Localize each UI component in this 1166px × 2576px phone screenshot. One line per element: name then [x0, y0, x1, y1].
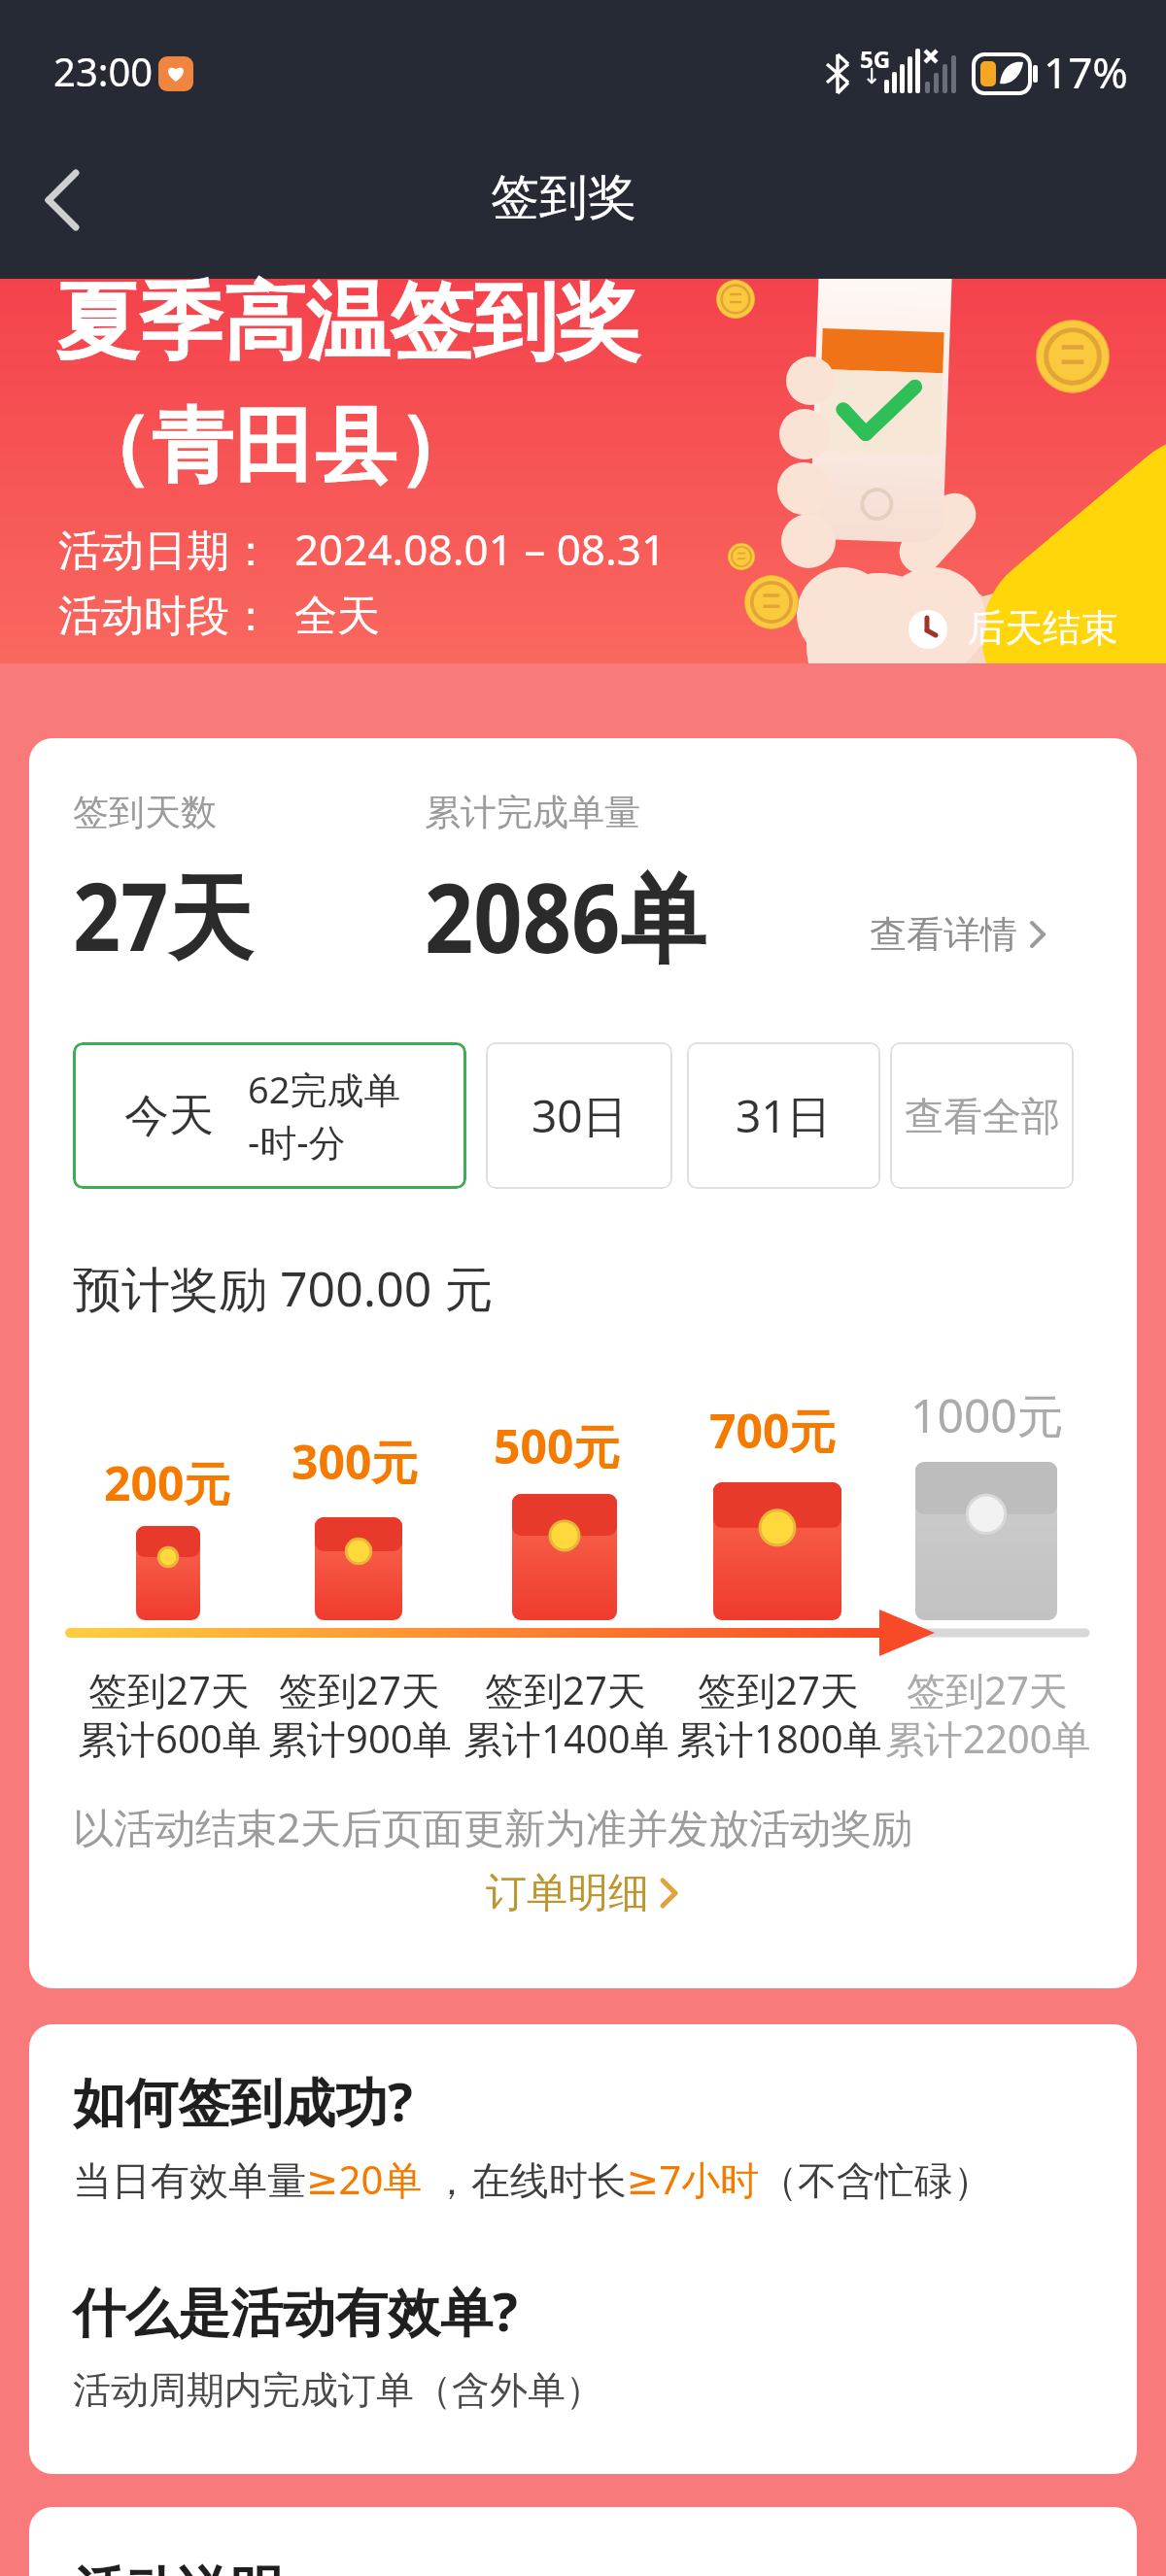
- staticText: 查看详情: [870, 911, 1017, 958]
- staticText: 签到27天: [698, 1663, 859, 1716]
- staticText: 200元: [104, 1451, 231, 1515]
- staticText: 签到天数: [73, 790, 217, 835]
- staticText: 累计完成单量: [425, 790, 640, 835]
- button[interactable]: 订单明细: [486, 1863, 695, 1923]
- staticText: 如何签到成功?: [73, 2065, 413, 2137]
- staticText: 300元: [291, 1430, 419, 1494]
- staticText: 62完成单: [248, 1064, 401, 1114]
- button[interactable]: 查看详情: [870, 905, 1079, 964]
- staticText: 500元: [494, 1414, 621, 1478]
- staticText: 后天结束: [967, 604, 1118, 652]
- staticText: 5G: [860, 43, 891, 75]
- staticText: 签到27天: [485, 1663, 646, 1716]
- staticText: 查看全部: [905, 1092, 1060, 1140]
- staticText: 订单明细: [486, 1868, 649, 1919]
- staticText: 31日: [736, 1085, 832, 1146]
- staticText: -时-分: [248, 1116, 346, 1167]
- staticText: 今天: [124, 1088, 214, 1144]
- staticText: 签到奖: [491, 167, 636, 228]
- staticText: 签到27天: [907, 1663, 1068, 1716]
- staticText: 1000元: [910, 1383, 1064, 1447]
- staticText: 什么是活动有效单?: [73, 2275, 518, 2347]
- staticText: 2086单: [425, 851, 706, 981]
- staticText: 27天: [73, 851, 253, 978]
- button[interactable]: 30日: [486, 1042, 672, 1189]
- staticText: 累计1800单: [676, 1712, 882, 1765]
- staticText: 以活动结束2天后页面更新为准并发放活动奖励: [73, 1799, 913, 1854]
- staticText: 累计600单: [78, 1712, 261, 1765]
- staticText: 活动说明: [73, 2559, 283, 2576]
- staticText: 活动周期内完成订单（含外单）: [73, 2366, 603, 2414]
- staticText: （青田县）: [70, 395, 478, 498]
- button[interactable]: 今天: [73, 1042, 466, 1189]
- staticText: 活动时段： 全天: [58, 585, 380, 643]
- staticText: 累计900单: [268, 1712, 452, 1765]
- button[interactable]: [29, 155, 117, 243]
- staticText: 700元: [709, 1399, 837, 1463]
- staticText: 累计1400单: [463, 1712, 669, 1765]
- button[interactable]: 31日: [687, 1042, 880, 1189]
- staticText: ↓: [863, 64, 881, 89]
- staticText: 17%: [1044, 43, 1128, 101]
- staticText: 30日: [532, 1085, 628, 1146]
- staticText: 签到27天: [279, 1663, 440, 1716]
- staticText: 夏季高温签到奖: [55, 270, 640, 375]
- staticText: 累计2200单: [885, 1712, 1091, 1765]
- staticText: 23:00: [53, 45, 154, 97]
- staticText: 当日有效单量≥20单 ，在线时长≥7小时（不含忙碌）: [73, 2152, 993, 2206]
- staticText: 签到27天: [88, 1663, 250, 1716]
- staticText: 预计奖励 700.00 元: [73, 1255, 494, 1321]
- staticText: 活动日期： 2024.08.01 – 08.31: [58, 520, 667, 578]
- button[interactable]: 查看全部: [890, 1042, 1074, 1189]
